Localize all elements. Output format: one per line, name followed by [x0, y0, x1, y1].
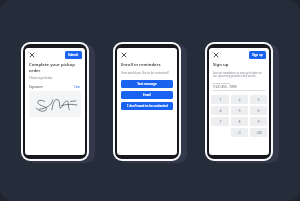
button[interactable]: Sign up — [249, 51, 266, 59]
staticText: 4 — [219, 108, 222, 113]
staticText: Signature — [29, 85, 43, 89]
staticText: 7 — [219, 119, 222, 124]
staticText: Clear — [74, 85, 81, 89]
staticText: Text message — [137, 82, 157, 86]
button[interactable]: Key 1 — [211, 95, 229, 104]
staticText: ⌫ — [256, 131, 262, 135]
button[interactable]: Key 6 — [250, 106, 267, 115]
staticText: 3 — [257, 97, 260, 102]
staticText: Email — [143, 93, 151, 97]
staticText: 6 — [257, 108, 260, 113]
button[interactable]: Key 8 — [231, 117, 248, 126]
staticText: Enroll in reminders — [121, 62, 161, 68]
staticText: 1 — [219, 97, 222, 102]
button[interactable]: Key 4 — [211, 106, 229, 115]
button[interactable]: Signature pad — [29, 91, 81, 117]
button[interactable]: Key 2 — [231, 95, 248, 104]
button[interactable]: I don't want to be contacted — [121, 102, 173, 110]
staticText: Sign up — [213, 62, 229, 68]
button[interactable]: Key ⌫ — [250, 128, 267, 137]
button[interactable]: Submit — [65, 51, 82, 59]
staticText: Sign up — [252, 53, 263, 57]
button[interactable]: Key 9 — [250, 117, 267, 126]
button[interactable]: Text message — [121, 80, 173, 88]
button[interactable]: Email — [121, 91, 173, 99]
button[interactable]: Close — [120, 51, 128, 59]
staticText: Join our newsletter to stay up to date o… — [213, 71, 265, 77]
staticText: I don't want to be contacted — [127, 104, 168, 108]
staticText: How would you like to be contacted? — [121, 71, 169, 75]
staticText: 0 — [238, 130, 241, 135]
button[interactable]: Key 3 — [250, 95, 267, 104]
staticText: 5 — [238, 108, 241, 113]
staticText: 9 — [257, 119, 260, 124]
staticText: Submit — [68, 53, 79, 57]
button[interactable]: Close — [212, 51, 220, 59]
staticText: 2 — [238, 97, 241, 102]
staticText: (123) 456 - 7890 — [213, 85, 237, 89]
button[interactable]: Key 5 — [231, 106, 248, 115]
staticText: Please sign below. — [29, 76, 53, 80]
button[interactable]: Clear — [74, 85, 81, 89]
button[interactable]: Key 0 — [231, 128, 248, 137]
button[interactable]: Key 7 — [211, 117, 229, 126]
button[interactable]: Close — [28, 51, 36, 59]
button[interactable]: (123) 456 - 7890 — [213, 85, 265, 91]
staticText: Phone number — [213, 81, 230, 84]
staticText: 8 — [238, 119, 241, 124]
staticText: Complete your pickup order — [29, 62, 81, 73]
